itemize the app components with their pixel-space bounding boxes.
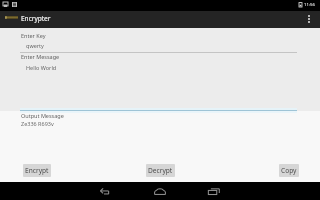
staticText: Enter Key bbox=[21, 32, 46, 39]
staticText: Copy bbox=[281, 166, 297, 175]
staticText: Encrypter bbox=[21, 14, 51, 23]
staticText: Encrypt bbox=[25, 166, 49, 175]
button[interactable]: Copy bbox=[279, 164, 299, 177]
staticText: Ze336 R693v bbox=[21, 120, 54, 127]
staticText: 11:56 bbox=[304, 1, 315, 7]
staticText: Hello World bbox=[26, 64, 57, 71]
staticText: Enter Message bbox=[21, 53, 60, 60]
staticText: Output Message bbox=[21, 112, 64, 119]
button[interactable]: Recents bbox=[203, 182, 225, 200]
staticText: qwerty bbox=[26, 42, 44, 49]
staticText: Decrypt bbox=[148, 166, 173, 175]
button[interactable]: Home bbox=[149, 182, 171, 200]
button[interactable]: Decrypt bbox=[146, 164, 175, 177]
button[interactable]: More options bbox=[302, 10, 316, 27]
button[interactable]: Encrypt bbox=[23, 164, 51, 177]
button[interactable]: Back bbox=[95, 182, 117, 200]
